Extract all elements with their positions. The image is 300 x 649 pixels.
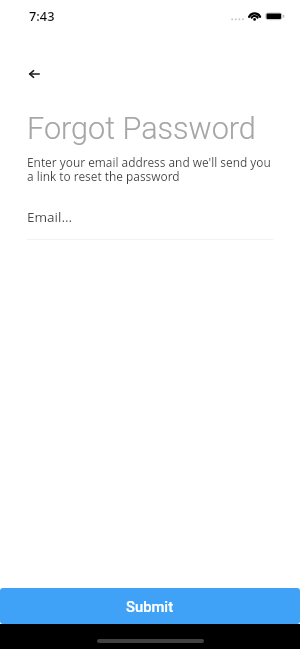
- staticText: Email...: [27, 208, 73, 226]
- button[interactable]: Submit: [0, 588, 300, 624]
- staticText: Submit: [126, 598, 174, 615]
- staticText: Forgot Password: [27, 111, 256, 147]
- button[interactable]: Back: [17, 57, 51, 91]
- staticText: Enter your email address and we'll send …: [27, 154, 278, 184]
- staticText: 7:43: [29, 7, 55, 24]
